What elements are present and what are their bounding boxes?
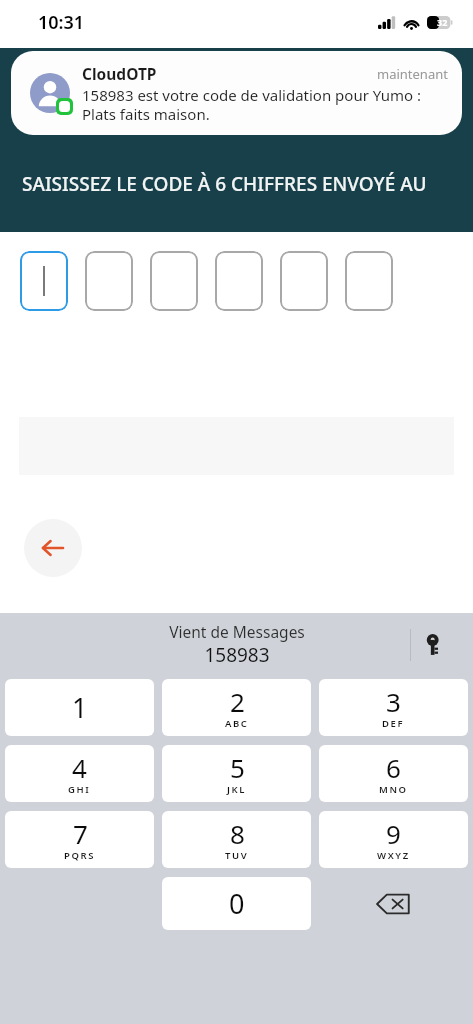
button[interactable]: 9 — [319, 811, 468, 868]
staticText: 6 — [386, 750, 401, 785]
staticText: 10:31 — [38, 10, 85, 35]
button[interactable]: Supprimer — [317, 875, 470, 932]
staticText: 158983 est votre code de validation pour… — [82, 85, 448, 124]
button[interactable]: Mots de passe — [417, 628, 451, 662]
staticText: GHI — [68, 783, 91, 796]
button[interactable] — [20, 251, 68, 311]
button[interactable]: 0 — [162, 877, 311, 930]
button[interactable] — [345, 251, 393, 311]
button[interactable] — [215, 251, 263, 311]
staticText: 32 — [437, 16, 448, 28]
staticText: SAISISSEZ LE CODE À 6 CHIFFRES ENVOYÉ AU — [22, 171, 427, 197]
button[interactable]: CloudOTP — [11, 51, 462, 135]
button[interactable]: 3 — [319, 679, 468, 736]
button[interactable]: 7 — [5, 811, 154, 868]
staticText: MNO — [379, 783, 408, 796]
staticText: Vient de Messages — [169, 621, 305, 642]
button[interactable]: Retour — [24, 519, 82, 577]
staticText: TUV — [225, 849, 249, 862]
staticText: 2 — [230, 684, 245, 719]
staticText: 7 — [73, 816, 88, 851]
staticText: CloudOTP — [82, 63, 157, 84]
button[interactable]: 4 — [5, 745, 154, 802]
button[interactable]: 1 — [5, 679, 154, 736]
staticText: 3 — [386, 684, 401, 719]
staticText: 5 — [230, 750, 245, 785]
staticText: WXYZ — [377, 849, 410, 862]
staticText: 0 — [229, 885, 245, 922]
button[interactable] — [280, 251, 328, 311]
staticText: 9 — [386, 816, 401, 851]
button[interactable]: 2 — [162, 679, 311, 736]
button[interactable]: 5 — [162, 745, 311, 802]
button[interactable] — [85, 251, 133, 311]
button[interactable]: 6 — [319, 745, 468, 802]
button[interactable]: 8 — [162, 811, 311, 868]
staticText: 8 — [230, 816, 245, 851]
staticText: JKL — [227, 783, 247, 796]
staticText: maintenant — [377, 65, 448, 83]
staticText: 158983 — [204, 642, 270, 668]
staticText: 1 — [72, 689, 88, 726]
staticText: DEF — [382, 717, 405, 730]
button[interactable] — [150, 251, 198, 311]
staticText: ABC — [225, 717, 249, 730]
staticText: 4 — [72, 750, 87, 785]
staticText: PQRS — [64, 849, 96, 862]
